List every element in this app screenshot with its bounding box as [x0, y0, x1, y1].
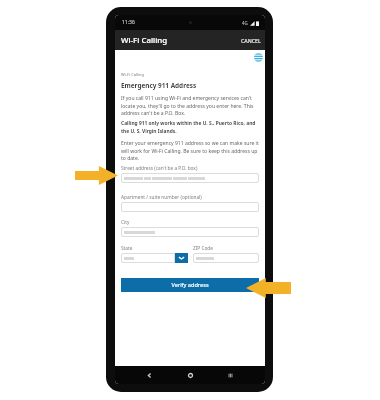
staticText: If you call 911 using Wi-Fi and emergenc…	[121, 95, 259, 116]
button[interactable]	[121, 227, 259, 237]
staticText: CANCEL	[241, 37, 261, 44]
staticText: Apartment / suite number (optional)	[121, 194, 202, 200]
staticText: ZIP Code	[193, 245, 213, 251]
staticText: Street address (can't be a P.O. box)	[121, 165, 198, 171]
staticText: Wi-Fi Calling	[121, 72, 144, 77]
button[interactable]	[121, 253, 175, 263]
button[interactable]: Verify address	[121, 278, 259, 292]
button[interactable]: Select state	[175, 253, 188, 263]
staticText: 4G	[242, 20, 248, 26]
staticText: Verify address	[171, 281, 209, 289]
button[interactable]: CANCEL	[240, 35, 262, 46]
button[interactable]	[193, 253, 259, 263]
button[interactable]: Recents	[225, 370, 236, 381]
button[interactable]	[121, 202, 259, 212]
staticText: Wi-Fi Calling	[121, 35, 168, 46]
staticText: Enter your emergency 911 address so we c…	[121, 140, 259, 161]
staticText: State	[121, 245, 133, 251]
button[interactable]: Back	[144, 370, 155, 381]
staticText: 11:36	[122, 19, 135, 26]
button[interactable]	[121, 173, 259, 183]
staticText: Calling 911 only works within the U. S.,…	[121, 120, 259, 134]
staticText: City	[121, 219, 130, 225]
staticText: Emergency 911 Address	[121, 81, 197, 90]
button[interactable]: Home	[185, 370, 196, 381]
